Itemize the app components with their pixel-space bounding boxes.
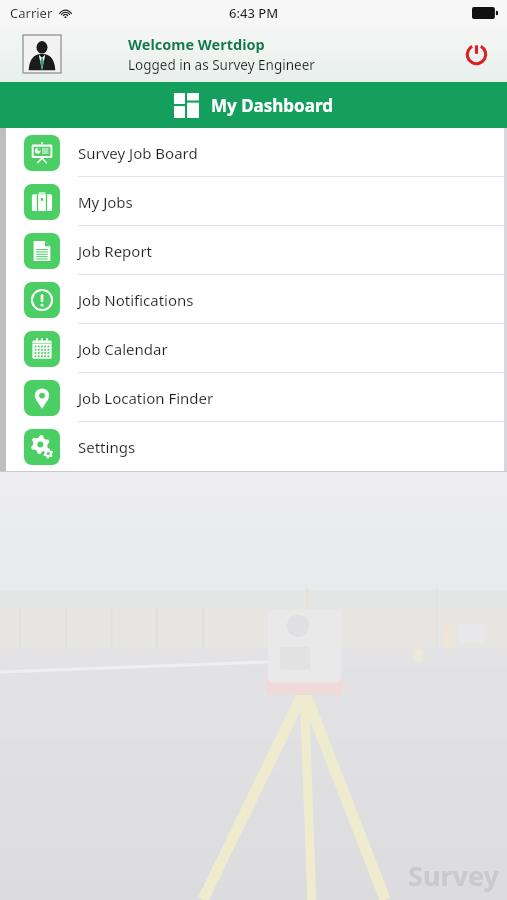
staticText: Job Report	[78, 241, 152, 261]
staticText: My Jobs	[78, 192, 133, 212]
staticText: Welcome Wertdiop	[128, 34, 265, 54]
button[interactable]: Job Notifications	[6, 275, 504, 324]
staticText: Job Calendar	[78, 339, 168, 359]
button[interactable]: Job Report	[6, 226, 504, 275]
staticText: Job Location Finder	[78, 388, 214, 408]
button[interactable]: Settings	[6, 422, 504, 471]
button[interactable]: Job Calendar	[6, 324, 504, 373]
button[interactable]: Log out	[459, 37, 493, 71]
staticText: Carrier	[10, 4, 53, 22]
button[interactable]: Job Location Finder	[6, 373, 504, 422]
staticText: Survey Job Board	[78, 143, 198, 163]
staticText: 6:43 PM	[229, 4, 279, 22]
staticText: Settings	[78, 437, 136, 457]
button[interactable]: Survey Job Board	[6, 128, 504, 177]
button[interactable]: My Jobs	[6, 177, 504, 226]
staticText: My Dashboard	[211, 94, 333, 117]
button[interactable]: My Dashboard	[0, 82, 507, 128]
button[interactable]: Profile	[23, 35, 61, 73]
staticText: Logged in as Survey Engineer	[128, 56, 315, 74]
staticText: Job Notifications	[78, 290, 194, 310]
staticText: Survey	[408, 857, 499, 894]
